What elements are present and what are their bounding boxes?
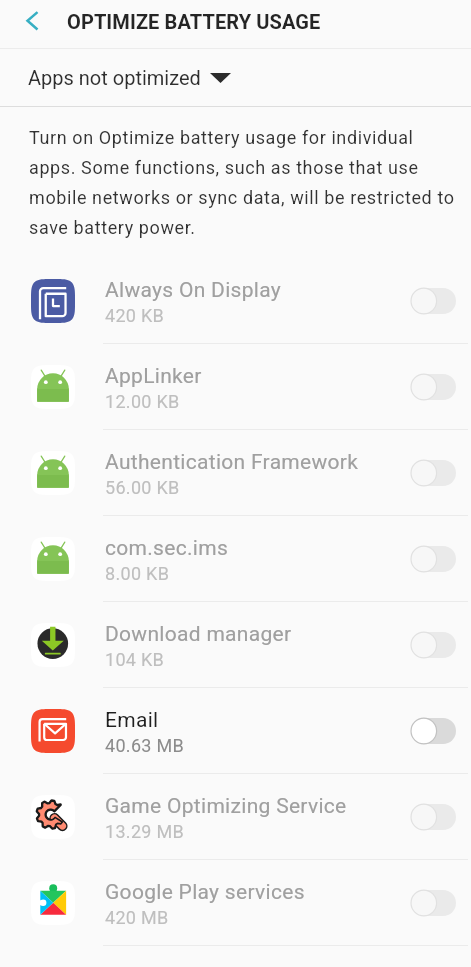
staticText: 56.00 KB xyxy=(105,477,180,498)
button[interactable]: Toggle optimize for Email xyxy=(396,701,471,761)
button[interactable]: com.sec.ims xyxy=(0,516,471,601)
button[interactable]: Download manager xyxy=(0,602,471,687)
staticText: Always On Display xyxy=(105,278,282,303)
staticText: 40.63 MB xyxy=(105,735,185,756)
staticText: 8.00 KB xyxy=(105,563,170,584)
staticText: 104 KB xyxy=(105,649,165,670)
button[interactable]: Google Play services xyxy=(0,860,471,945)
staticText: Email xyxy=(105,708,159,733)
button[interactable]: Toggle optimize for Download manager xyxy=(396,615,471,675)
staticText: 12.00 KB xyxy=(105,391,180,412)
button[interactable]: AppLinker xyxy=(0,344,471,429)
button[interactable]: Game Optimizing Service xyxy=(0,774,471,859)
staticText: Download manager xyxy=(105,622,292,647)
button[interactable]: Authentication Framework xyxy=(0,430,471,515)
staticText: AppLinker xyxy=(105,364,202,389)
staticText: Apps not optimized xyxy=(28,66,201,89)
button[interactable]: Toggle optimize for Authentication Frame… xyxy=(396,443,471,503)
button[interactable]: Toggle optimize for Game Optimizing Serv… xyxy=(396,787,471,847)
staticText: Google Play services xyxy=(105,880,305,905)
button[interactable]: Always On Display xyxy=(0,258,471,343)
staticText: com.sec.ims xyxy=(105,536,229,561)
button[interactable]: Apps not optimized xyxy=(0,49,471,106)
staticText: Turn on Optimize battery usage for indiv… xyxy=(29,127,461,238)
staticText: Authentication Framework xyxy=(105,450,359,475)
button[interactable]: Toggle optimize for Google Play services xyxy=(396,873,471,933)
button[interactable]: Email xyxy=(0,688,471,773)
staticText: 13.29 MB xyxy=(105,821,185,842)
staticText: Game Optimizing Service xyxy=(105,794,347,819)
button[interactable]: Toggle optimize for AppLinker xyxy=(396,357,471,417)
staticText: 420 MB xyxy=(105,907,169,928)
button[interactable]: Toggle optimize for com.sec.ims xyxy=(396,529,471,589)
staticText: 420 KB xyxy=(105,305,165,326)
button[interactable]: Toggle optimize for Always On Display xyxy=(396,271,471,331)
button[interactable]: Navigate up xyxy=(0,0,65,48)
staticText: OPTIMIZE BATTERY USAGE xyxy=(67,10,321,33)
